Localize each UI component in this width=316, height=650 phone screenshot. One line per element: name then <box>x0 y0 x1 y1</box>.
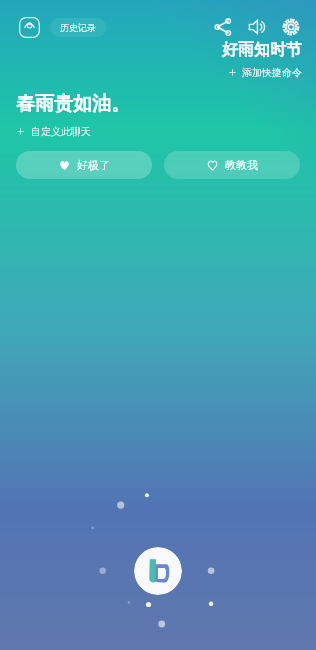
staticText: 好雨知时节 <box>222 40 302 60</box>
staticText: 添加快捷命令 <box>242 66 302 79</box>
button[interactable]: Bixby <box>134 547 182 595</box>
staticText: 好极了 <box>77 158 110 172</box>
button[interactable]: 自定义此聊天 <box>16 125 91 138</box>
staticText: 春雨贵如油。 <box>16 92 130 116</box>
staticText: 教教我 <box>225 158 258 172</box>
button[interactable]: Profile <box>14 12 44 42</box>
staticText: 自定义此聊天 <box>31 125 91 138</box>
button[interactable]: 好极了 <box>16 151 152 179</box>
button[interactable]: 历史记录 <box>50 18 106 37</box>
button[interactable]: Volume <box>240 10 274 44</box>
button[interactable]: 添加快捷命令 <box>228 66 302 79</box>
button[interactable]: Settings <box>274 10 308 44</box>
staticText: 历史记录 <box>60 22 96 33</box>
button[interactable]: 教教我 <box>164 151 300 179</box>
button[interactable]: Share <box>206 10 240 44</box>
